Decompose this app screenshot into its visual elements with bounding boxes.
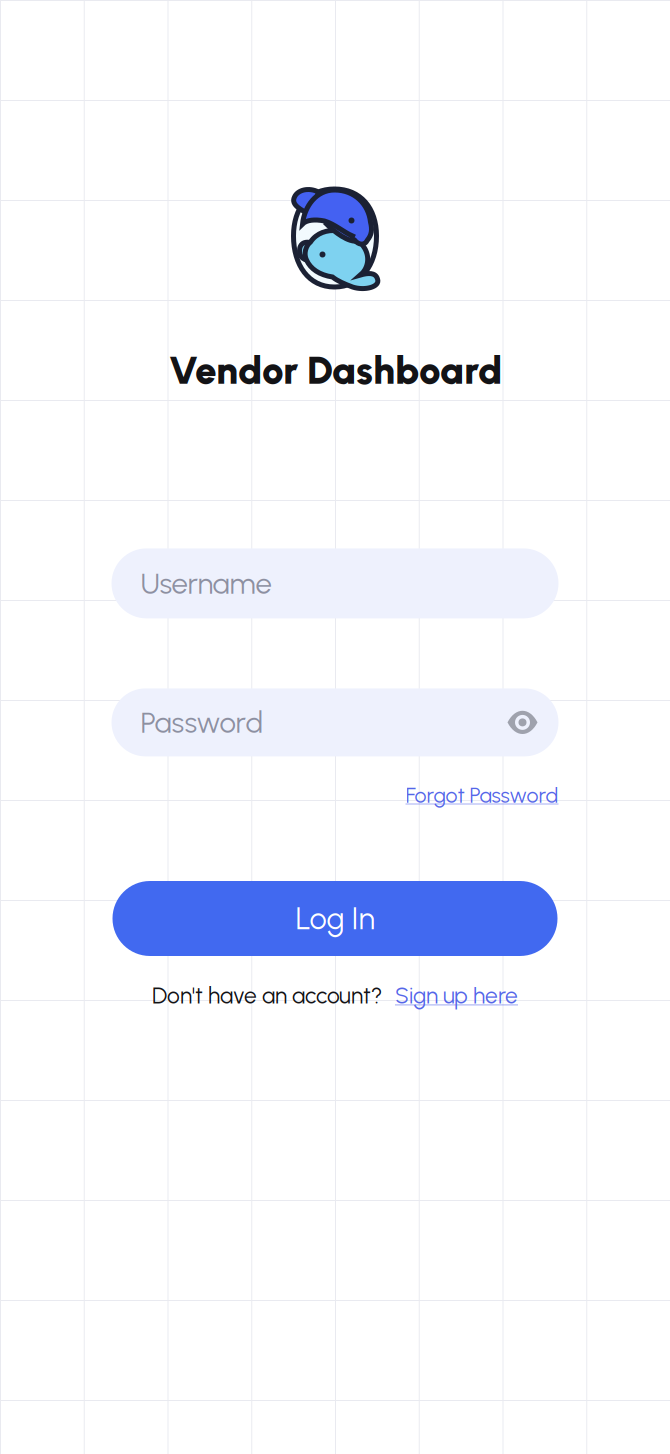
- staticText: Username: [140, 566, 271, 601]
- staticText: Vendor Dashboard: [168, 347, 502, 393]
- button[interactable]: Forgot Password: [405, 782, 558, 808]
- button[interactable]: Log In: [112, 881, 557, 956]
- staticText: Sign up here: [395, 982, 518, 1009]
- staticText: Password: [140, 705, 263, 740]
- button[interactable]: Sign up here: [395, 982, 518, 1009]
- staticText: Don't have an account?: [152, 982, 382, 1009]
- button[interactable]: Show password: [507, 708, 537, 737]
- staticText: Forgot Password: [405, 782, 558, 808]
- staticText: Log In: [295, 900, 374, 937]
